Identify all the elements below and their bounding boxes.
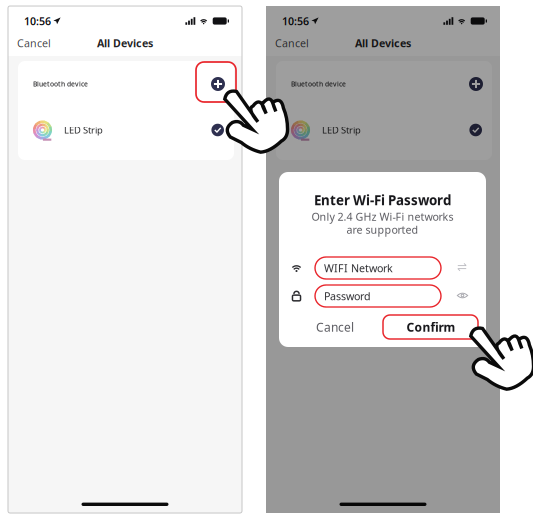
staticText: WIFI Network	[324, 261, 393, 275]
button[interactable]: Confirm	[383, 315, 479, 339]
button[interactable]: Cancel	[17, 34, 57, 52]
staticText: LED Strip	[322, 124, 361, 136]
staticText: Cancel	[17, 36, 51, 50]
staticText: 10:56	[282, 14, 309, 28]
staticText: Confirm	[406, 319, 455, 335]
staticText: Only 2.4 GHz Wi-Fi networks	[311, 209, 453, 224]
staticText: All Devices	[355, 36, 411, 50]
staticText: Cancel	[275, 36, 309, 50]
staticText: Bluetooth device	[291, 80, 346, 88]
button[interactable]: Cancel	[275, 34, 315, 52]
staticText: are supported	[346, 222, 418, 237]
button[interactable]: LED Strip	[276, 107, 492, 153]
button[interactable]: Password	[315, 285, 441, 307]
staticText: 10:56	[24, 14, 51, 28]
button[interactable]: WIFI Network	[315, 257, 441, 279]
button[interactable]: Bluetooth device	[18, 61, 234, 107]
button[interactable]: Bluetooth device	[276, 61, 492, 107]
staticText: Enter Wi-Fi Password	[314, 191, 451, 209]
staticText: All Devices	[97, 36, 153, 50]
staticText: Password	[324, 289, 371, 303]
staticText: LED Strip	[64, 124, 103, 136]
button[interactable]: LED Strip	[18, 107, 234, 153]
staticText: Bluetooth device	[33, 80, 88, 88]
button[interactable]: Cancel	[287, 315, 383, 339]
staticText: Cancel	[316, 319, 354, 335]
